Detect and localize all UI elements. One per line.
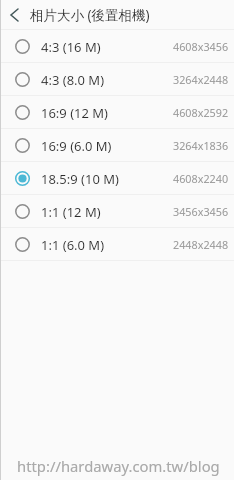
staticText: 4608x2240 [173, 171, 229, 186]
staticText: 1:1 (12 M) [41, 203, 101, 221]
staticText: 1:1 (6.0 M) [41, 236, 105, 254]
staticText: 2448x2448 [173, 237, 229, 252]
staticText: 3264x1836 [173, 138, 229, 153]
button[interactable]: 16:9 (12 M) [0, 96, 234, 129]
staticText: 4:3 (16 M) [41, 38, 101, 56]
button[interactable]: 4:3 (16 M) [0, 30, 234, 63]
button[interactable]: 4:3 (8.0 M) [0, 63, 234, 96]
staticText: 相片大小 (後置相機) [30, 6, 150, 24]
button[interactable]: 18.5:9 (10 M) [0, 162, 234, 195]
staticText: 4608x3456 [173, 39, 229, 54]
staticText: 3456x3456 [173, 204, 229, 219]
staticText: 16:9 (12 M) [41, 104, 109, 122]
staticText: 4608x2592 [173, 105, 229, 120]
button[interactable]: 16:9 (6.0 M) [0, 129, 234, 162]
staticText: 16:9 (6.0 M) [41, 137, 112, 155]
staticText: 3264x2448 [173, 72, 229, 87]
button[interactable] [0, 0, 28, 30]
staticText: 18.5:9 (10 M) [41, 170, 119, 188]
button[interactable]: 1:1 (6.0 M) [0, 228, 234, 261]
button[interactable]: 1:1 (12 M) [0, 195, 234, 228]
staticText: http://hardaway.com.tw/blog [17, 456, 220, 476]
staticText: 4:3 (8.0 M) [41, 71, 105, 89]
